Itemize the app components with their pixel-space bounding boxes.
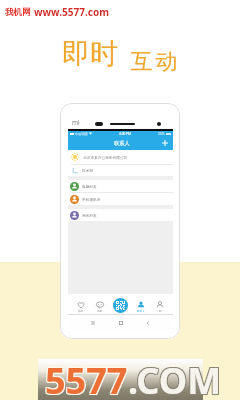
staticText: mi [72, 118, 80, 127]
staticText: 中国联通 [75, 132, 88, 136]
button[interactable]: 我的好友 [68, 209, 173, 221]
button[interactable]: 技术部 [68, 165, 173, 176]
staticText: www.5577.com [34, 5, 109, 19]
button[interactable]: 消息 [95, 294, 105, 305]
staticText: 电脑好友 [82, 184, 97, 189]
staticText: 5577 [45, 356, 128, 400]
button[interactable]: Add contact [162, 140, 168, 146]
staticText: 我机网 [5, 7, 31, 18]
staticText: 我 [159, 309, 162, 312]
staticText: .COM [127, 355, 221, 400]
button[interactable]: 北京市某办公服务有限公司 [68, 150, 173, 164]
button[interactable]: 动态 [76, 294, 86, 305]
staticText: 5577 [46, 357, 129, 400]
staticText: 5577 [44, 355, 127, 400]
button[interactable]: Scan QR code [113, 298, 128, 313]
staticText: 手机通讯录 [82, 197, 101, 202]
staticText: 北京市某办公服务有限公司 [83, 155, 128, 160]
staticText: 5577 [44, 357, 127, 400]
staticText: 消息 [97, 309, 103, 312]
button[interactable]: 联系人 [136, 294, 146, 305]
button[interactable]: 我 [155, 294, 165, 305]
staticText: 互动 [129, 48, 179, 76]
staticText: 4:30 PM [119, 132, 131, 136]
button[interactable]: 手机通讯录 [68, 193, 173, 205]
staticText: 我的好友 [82, 213, 97, 218]
staticText: 25% [158, 132, 165, 136]
staticText: 动态 [78, 309, 84, 312]
staticText: .COM [129, 355, 223, 400]
staticText: 即时 [62, 36, 118, 71]
button[interactable]: 电脑好友 [68, 180, 173, 192]
staticText: .COM [128, 356, 222, 400]
staticText: 5577 [46, 355, 129, 400]
staticText: .COM [129, 357, 223, 400]
staticText: 技术部 [82, 168, 94, 173]
staticText: 联系人 [137, 309, 145, 312]
staticText: 联系人 [114, 140, 130, 147]
staticText: .COM [127, 357, 221, 400]
